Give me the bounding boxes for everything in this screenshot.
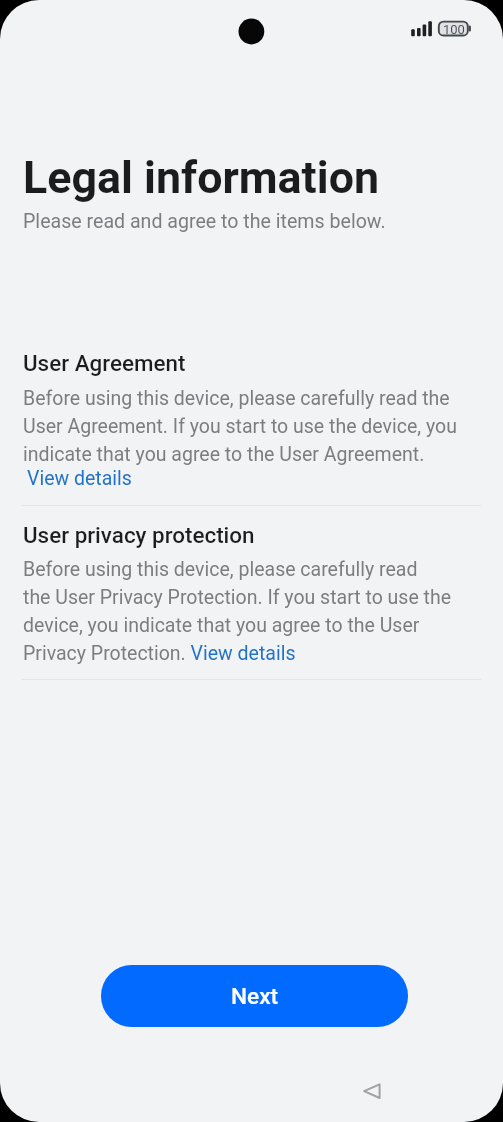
staticText: User privacy protection xyxy=(23,522,255,548)
button[interactable]: Back xyxy=(348,1067,396,1115)
button[interactable]: View details xyxy=(23,467,128,490)
staticText: User Agreement xyxy=(23,350,186,376)
button[interactable]: Next xyxy=(101,965,408,1027)
staticText: Please read and agree to the items below… xyxy=(23,210,386,233)
staticText: View details xyxy=(27,467,132,490)
staticText: 100 xyxy=(443,22,465,37)
staticText: Legal information xyxy=(23,151,380,204)
button[interactable]: Before using this device, please careful… xyxy=(23,554,452,666)
staticText: Next xyxy=(231,983,279,1009)
button[interactable]: Before using this device, please careful… xyxy=(23,383,457,467)
